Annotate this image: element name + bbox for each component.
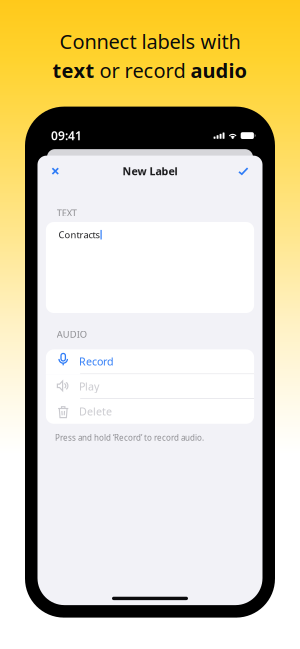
staticText: Delete bbox=[79, 404, 112, 418]
staticText: Record bbox=[79, 354, 114, 369]
staticText: AUDIO bbox=[57, 328, 87, 340]
staticText: TEXT bbox=[57, 207, 77, 219]
staticText: text or record audio bbox=[52, 57, 247, 84]
staticText: Contracts bbox=[58, 228, 99, 241]
button[interactable]: Record bbox=[46, 349, 254, 374]
button[interactable]: Delete bbox=[46, 399, 254, 424]
button[interactable]: Play bbox=[46, 374, 254, 399]
button[interactable]: Cancel bbox=[46, 161, 64, 181]
staticText: 09:41 bbox=[51, 128, 82, 144]
staticText: Play bbox=[79, 379, 99, 393]
staticText: New Label bbox=[122, 164, 177, 178]
button[interactable]: Done bbox=[233, 161, 253, 181]
staticText: Connect labels with bbox=[59, 28, 240, 55]
staticText: Press and hold ‘Record’ to record audio. bbox=[55, 432, 204, 443]
